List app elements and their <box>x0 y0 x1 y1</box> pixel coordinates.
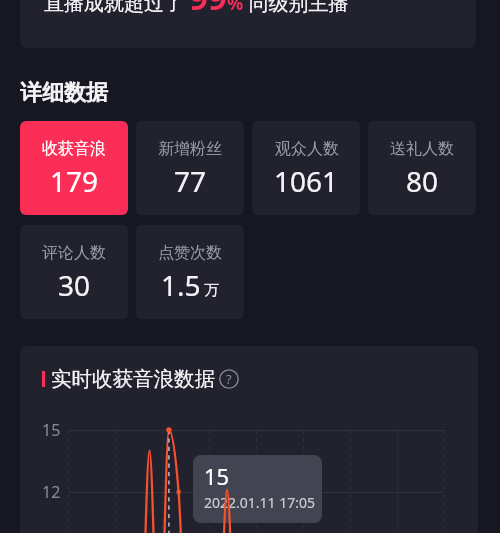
button[interactable]: 送礼人数 <box>368 121 476 215</box>
staticText: 观众人数 <box>275 139 339 159</box>
staticText: 80 <box>406 162 439 200</box>
button[interactable]: 点赞次数 <box>136 225 244 319</box>
button[interactable]: 新增粉丝 <box>136 121 244 215</box>
staticText: 77 <box>174 162 207 200</box>
staticText: 评论人数 <box>42 243 106 263</box>
staticText: 12 <box>42 481 61 503</box>
staticText: 详细数据 <box>20 79 108 107</box>
staticText: 万 <box>204 281 219 300</box>
staticText: 15 <box>42 419 61 441</box>
staticText: 30 <box>58 266 91 304</box>
staticText: 送礼人数 <box>390 139 454 159</box>
staticText: 1061 <box>274 162 339 200</box>
staticText: 直播成就超过了 99% 同级别主播 <box>44 0 349 20</box>
button[interactable]: 说明 <box>219 369 239 389</box>
staticText: 实时收获音浪数据 <box>51 366 215 392</box>
staticText: 15 <box>204 461 230 491</box>
staticText: 1.5 <box>161 266 201 304</box>
button[interactable]: 评论人数 <box>20 225 128 319</box>
button[interactable]: 收获音浪 <box>20 121 128 215</box>
staticText: 179 <box>50 162 99 200</box>
staticText: ? <box>226 370 232 388</box>
button[interactable]: 观众人数 <box>252 121 360 215</box>
staticText: 点赞次数 <box>158 243 222 263</box>
staticText: 收获音浪 <box>42 139 106 159</box>
staticText: 新增粉丝 <box>158 139 222 159</box>
button[interactable]: 直播成就超过了 99% 同级别主播 <box>20 0 476 48</box>
staticText: 2022.01.11 17:05 <box>204 493 315 512</box>
